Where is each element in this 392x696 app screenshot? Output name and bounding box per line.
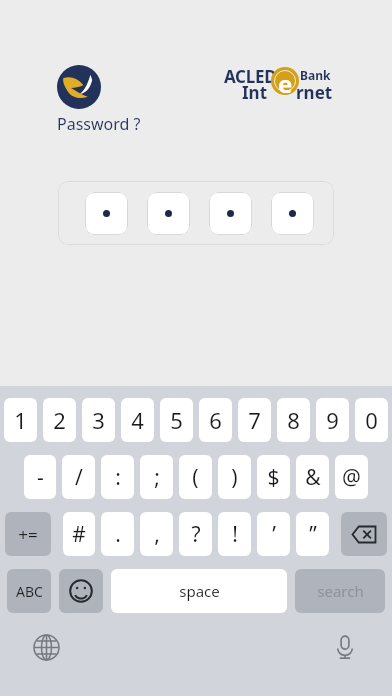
button[interactable]: 9: [316, 398, 349, 442]
staticText: :: [115, 463, 121, 492]
button[interactable]: [147, 192, 190, 235]
staticText: ;: [154, 463, 160, 492]
staticText: (: [192, 463, 199, 492]
button[interactable]: 5: [160, 398, 193, 442]
staticText: &: [305, 463, 321, 492]
button[interactable]: Emoji: [59, 569, 103, 613]
button[interactable]: 7: [238, 398, 271, 442]
button[interactable]: -: [24, 455, 56, 499]
button[interactable]: Voice input: [329, 631, 361, 663]
staticText: .: [115, 520, 121, 549]
staticText: rnet: [296, 81, 333, 104]
button[interactable]: [209, 192, 252, 235]
staticText: #: [72, 520, 86, 549]
button[interactable]: search: [295, 569, 385, 613]
button[interactable]: /: [62, 455, 95, 499]
staticText: Bank: [300, 67, 331, 83]
button[interactable]: +=: [5, 512, 51, 556]
button[interactable]: :: [101, 455, 134, 499]
staticText: +=: [18, 523, 38, 546]
staticText: 7: [248, 405, 261, 435]
staticText: $: [267, 463, 280, 492]
staticText: space: [179, 581, 220, 601]
staticText: ,: [154, 520, 160, 549]
button[interactable]: ?: [179, 512, 212, 556]
staticText: 4: [131, 405, 144, 435]
button[interactable]: 8: [277, 398, 310, 442]
staticText: Int: [242, 81, 268, 104]
button[interactable]: 1: [4, 398, 37, 442]
button[interactable]: 4: [121, 398, 154, 442]
staticText: 8: [287, 405, 300, 435]
button[interactable]: ’: [257, 512, 290, 556]
staticText: -: [37, 463, 44, 492]
staticText: @: [342, 463, 361, 492]
staticText: ’: [272, 520, 276, 549]
button[interactable]: ;: [140, 455, 173, 499]
button[interactable]: space: [111, 569, 287, 613]
button[interactable]: ,: [140, 512, 173, 556]
staticText: 1: [14, 405, 27, 435]
staticText: ABC: [16, 582, 43, 601]
staticText: 3: [92, 405, 105, 435]
staticText: search: [317, 581, 364, 601]
button[interactable]: ”: [296, 512, 329, 556]
button[interactable]: 0: [355, 398, 388, 442]
staticText: 6: [209, 405, 222, 435]
staticText: 0: [365, 405, 378, 435]
button[interactable]: [85, 192, 128, 235]
button[interactable]: &: [296, 455, 329, 499]
button[interactable]: ABC: [7, 569, 51, 613]
button[interactable]: $: [257, 455, 290, 499]
staticText: ”: [309, 520, 317, 549]
button[interactable]: @: [335, 455, 368, 499]
staticText: ?: [191, 520, 201, 549]
button[interactable]: Change language: [30, 631, 62, 663]
staticText: 9: [326, 405, 339, 435]
button[interactable]: Backspace: [341, 512, 387, 556]
staticText: ): [231, 463, 238, 492]
button[interactable]: .: [101, 512, 134, 556]
button[interactable]: !: [218, 512, 251, 556]
button[interactable]: #: [63, 512, 95, 556]
button[interactable]: 2: [43, 398, 76, 442]
staticText: Password ?: [57, 113, 141, 135]
staticText: 5: [170, 405, 183, 435]
button[interactable]: 6: [199, 398, 232, 442]
staticText: ACLEDA: [224, 65, 288, 88]
staticText: e: [278, 67, 293, 95]
button[interactable]: ): [218, 455, 251, 499]
staticText: /: [75, 463, 83, 492]
button[interactable]: 3: [82, 398, 115, 442]
button[interactable]: (: [179, 455, 212, 499]
button[interactable]: [271, 192, 314, 235]
staticText: 2: [53, 405, 66, 435]
staticText: !: [232, 520, 238, 549]
